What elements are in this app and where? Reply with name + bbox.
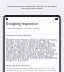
staticText: Consistent spacing scales create visual … (6, 67, 58, 71)
button[interactable]: Back (6, 17, 58, 20)
staticText: Designing responsive (6, 22, 38, 26)
button[interactable]: Back (6, 18, 8, 20)
staticText: Layout fundamentals (6, 33, 31, 36)
staticText: Modern interfaces need to adapt to many … (6, 38, 58, 61)
staticText: Understanding adaptive layouts in modern… (5, 4, 59, 10)
button[interactable]: More options (55, 18, 58, 20)
staticText: Practical guidance for product teams (6, 27, 39, 30)
staticText: Spacing and rhythm (6, 63, 30, 66)
